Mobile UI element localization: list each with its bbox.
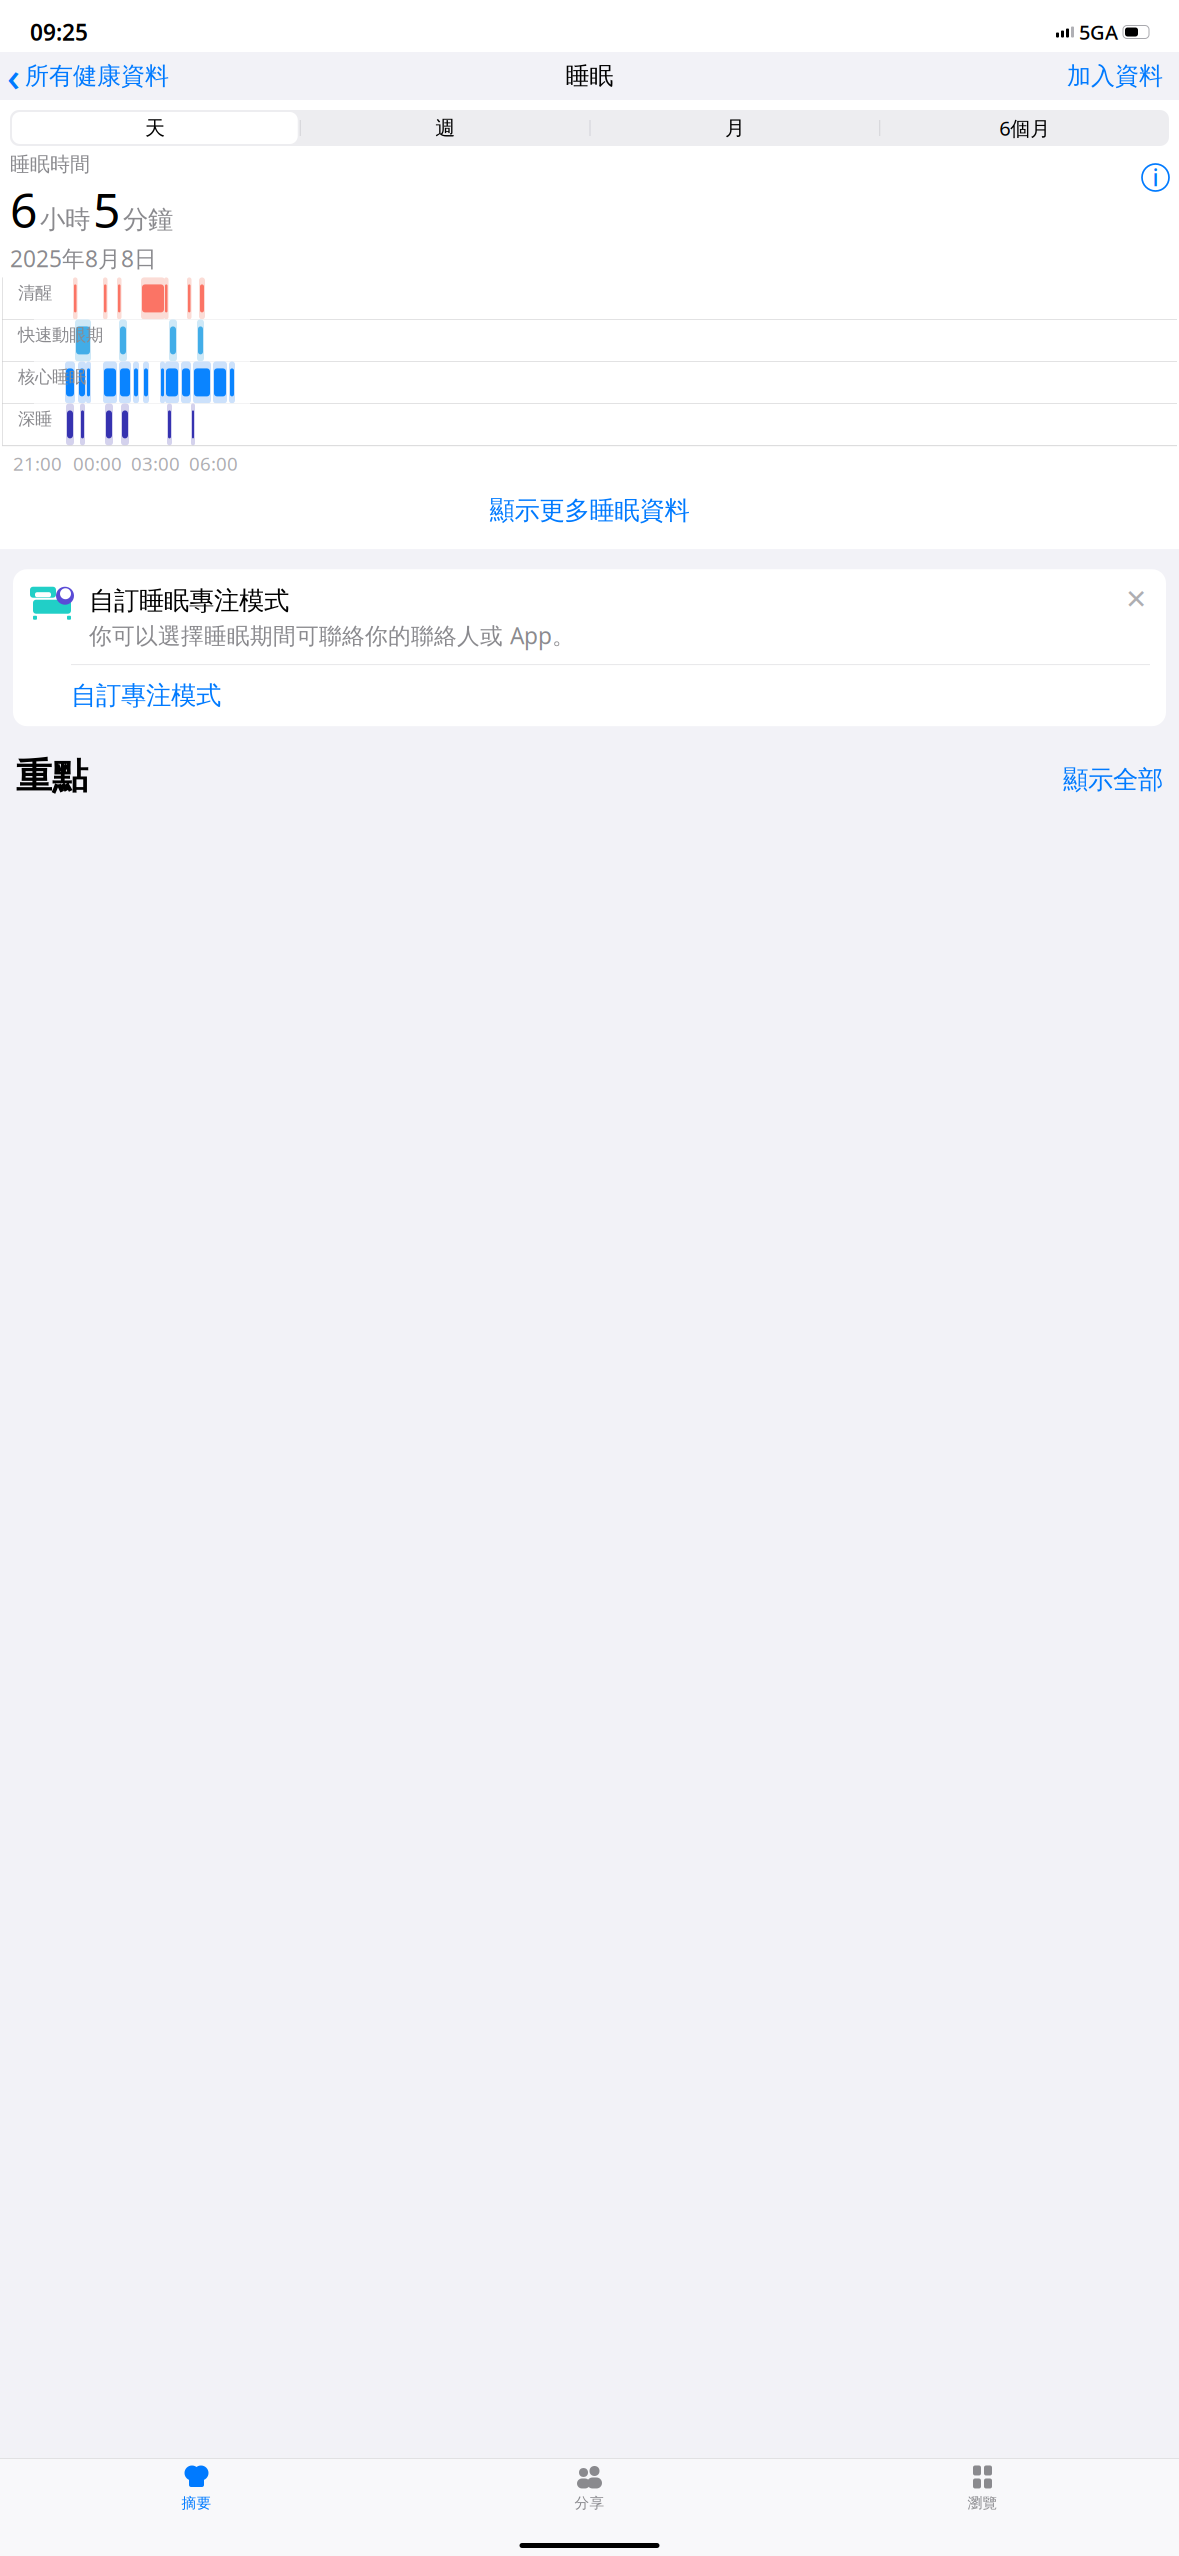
staticText: 00:00 bbox=[73, 451, 122, 476]
staticText: 5 bbox=[93, 178, 120, 241]
staticText: 21:00 bbox=[13, 451, 62, 476]
staticText: 天 bbox=[145, 116, 165, 140]
staticText: 瀏覽 bbox=[967, 2494, 997, 2512]
staticText: 所有健康資料 bbox=[25, 61, 169, 91]
staticText: 加入資料 bbox=[1067, 61, 1163, 91]
staticText: 小時 bbox=[40, 204, 90, 235]
staticText: 清醒 bbox=[18, 282, 52, 304]
staticText: ✕ bbox=[1125, 584, 1147, 614]
staticText: 週 bbox=[435, 116, 455, 140]
staticText: 重點 bbox=[16, 754, 88, 798]
staticText: 摘要 bbox=[181, 2494, 211, 2512]
staticText: i bbox=[1152, 162, 1158, 192]
staticText: 6 bbox=[10, 178, 37, 241]
staticText: 顯示更多睡眠資料 bbox=[489, 495, 689, 526]
staticText: 09:25 bbox=[30, 17, 88, 47]
staticText: 深睡 bbox=[18, 408, 52, 430]
staticText: 自訂睡眠專注模式 bbox=[89, 585, 289, 616]
button[interactable]: 自訂專注模式 bbox=[71, 665, 1150, 726]
staticText: ‹ bbox=[7, 49, 20, 102]
button[interactable]: 分享 bbox=[393, 2457, 786, 2512]
button[interactable]: 加入資料 bbox=[1067, 61, 1179, 91]
staticText: 顯示全部 bbox=[1063, 764, 1163, 795]
staticText: 睡眠時間 bbox=[10, 152, 90, 177]
staticText: 你可以選擇睡眠期間可聯絡你的聯絡人或 App。 bbox=[89, 620, 575, 650]
staticText: 分享 bbox=[574, 2494, 604, 2512]
button[interactable]: ‹ bbox=[0, 49, 169, 102]
staticText: 分鐘 bbox=[123, 204, 173, 235]
button[interactable]: 顯示更多睡眠資料 bbox=[0, 480, 1179, 541]
staticText: 2025年8月8日 bbox=[10, 243, 157, 273]
staticText: 核心睡眠 bbox=[18, 366, 86, 388]
button[interactable]: 瀏覽 bbox=[786, 2457, 1179, 2512]
button[interactable]: 關於睡眠 bbox=[1142, 146, 1169, 191]
button[interactable]: 天 bbox=[10, 110, 300, 146]
staticText: 03:00 bbox=[131, 451, 180, 476]
button[interactable]: 6個月 bbox=[880, 110, 1169, 146]
button[interactable]: 關閉 bbox=[1122, 585, 1150, 613]
staticText: 自訂專注模式 bbox=[71, 680, 221, 711]
staticText: 月 bbox=[725, 116, 745, 140]
staticText: 06:00 bbox=[189, 451, 238, 476]
staticText: 6個月 bbox=[999, 115, 1050, 141]
staticText: 快速動眼期 bbox=[18, 324, 103, 346]
button[interactable]: 月 bbox=[590, 110, 879, 146]
button[interactable]: 顯示全部 bbox=[1063, 764, 1163, 795]
staticText: 5GA bbox=[1079, 19, 1118, 45]
button[interactable]: 摘要 bbox=[0, 2457, 393, 2512]
staticText: 睡眠 bbox=[565, 61, 613, 91]
button[interactable]: 週 bbox=[301, 110, 590, 146]
